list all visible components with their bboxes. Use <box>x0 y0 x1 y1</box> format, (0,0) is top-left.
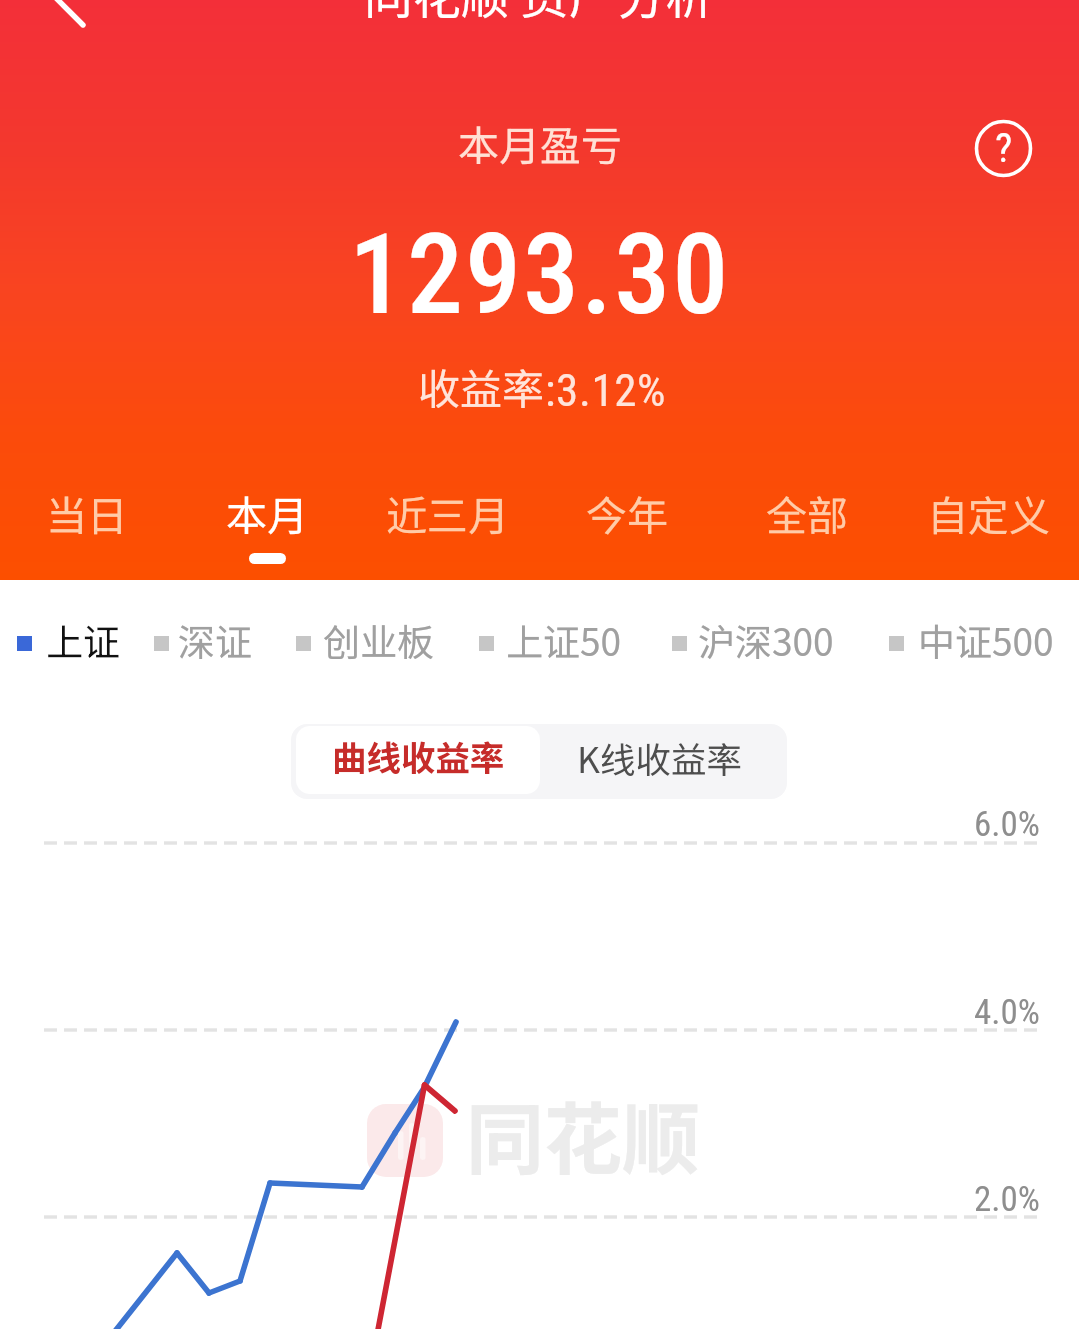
staticText: 深证 <box>178 613 252 667</box>
staticText: :3.12% <box>545 364 667 417</box>
button[interactable]: Help <box>974 119 1033 178</box>
button[interactable]: 本月 <box>180 471 354 571</box>
staticText: 近三月 <box>386 483 509 542</box>
staticText: K线收益率 <box>577 732 742 783</box>
button[interactable]: 上证 <box>11 606 128 664</box>
staticText: 本月 <box>226 483 308 542</box>
staticText: 创业板 <box>323 613 434 667</box>
staticText: 同花顺 <box>466 1078 701 1191</box>
button[interactable]: 今年 <box>540 471 714 571</box>
button[interactable]: 沪深300 <box>666 606 888 664</box>
button[interactable]: 中证500 <box>883 606 1079 664</box>
button[interactable]: 当日 <box>0 471 174 571</box>
button[interactable]: 近三月 <box>360 471 534 571</box>
button[interactable]: 深证 <box>148 606 260 664</box>
staticText: ? <box>995 124 1013 172</box>
staticText: 本月盈亏 <box>458 113 622 172</box>
staticText: 全部 <box>766 483 848 542</box>
button[interactable]: 创业板 <box>290 606 441 664</box>
button[interactable]: 上证50 <box>473 606 660 664</box>
staticText: 当日 <box>46 483 128 542</box>
button[interactable]: K线收益率 <box>540 724 787 799</box>
staticText: 中证500 <box>918 613 1054 667</box>
button[interactable]: 自定义 <box>901 471 1075 571</box>
staticText: 自定义 <box>927 483 1050 542</box>
staticText: 收益率 <box>418 356 545 417</box>
staticText: 上证 <box>46 613 120 667</box>
staticText: 上证50 <box>506 613 622 667</box>
staticText: 6.0% <box>974 804 1040 845</box>
staticText: 曲线收益率 <box>332 731 505 781</box>
button[interactable]: 全部 <box>720 471 894 571</box>
staticText: 4.0% <box>974 992 1040 1033</box>
staticText: 今年 <box>586 483 668 542</box>
button[interactable]: 曲线收益率 <box>296 726 540 794</box>
staticText: 同花顺 资产分析 <box>364 0 715 28</box>
staticText: 2.0% <box>974 1179 1040 1220</box>
button[interactable]: Back <box>24 0 114 40</box>
staticText: 1293.30 <box>349 209 731 340</box>
staticText: 沪深300 <box>698 613 834 667</box>
